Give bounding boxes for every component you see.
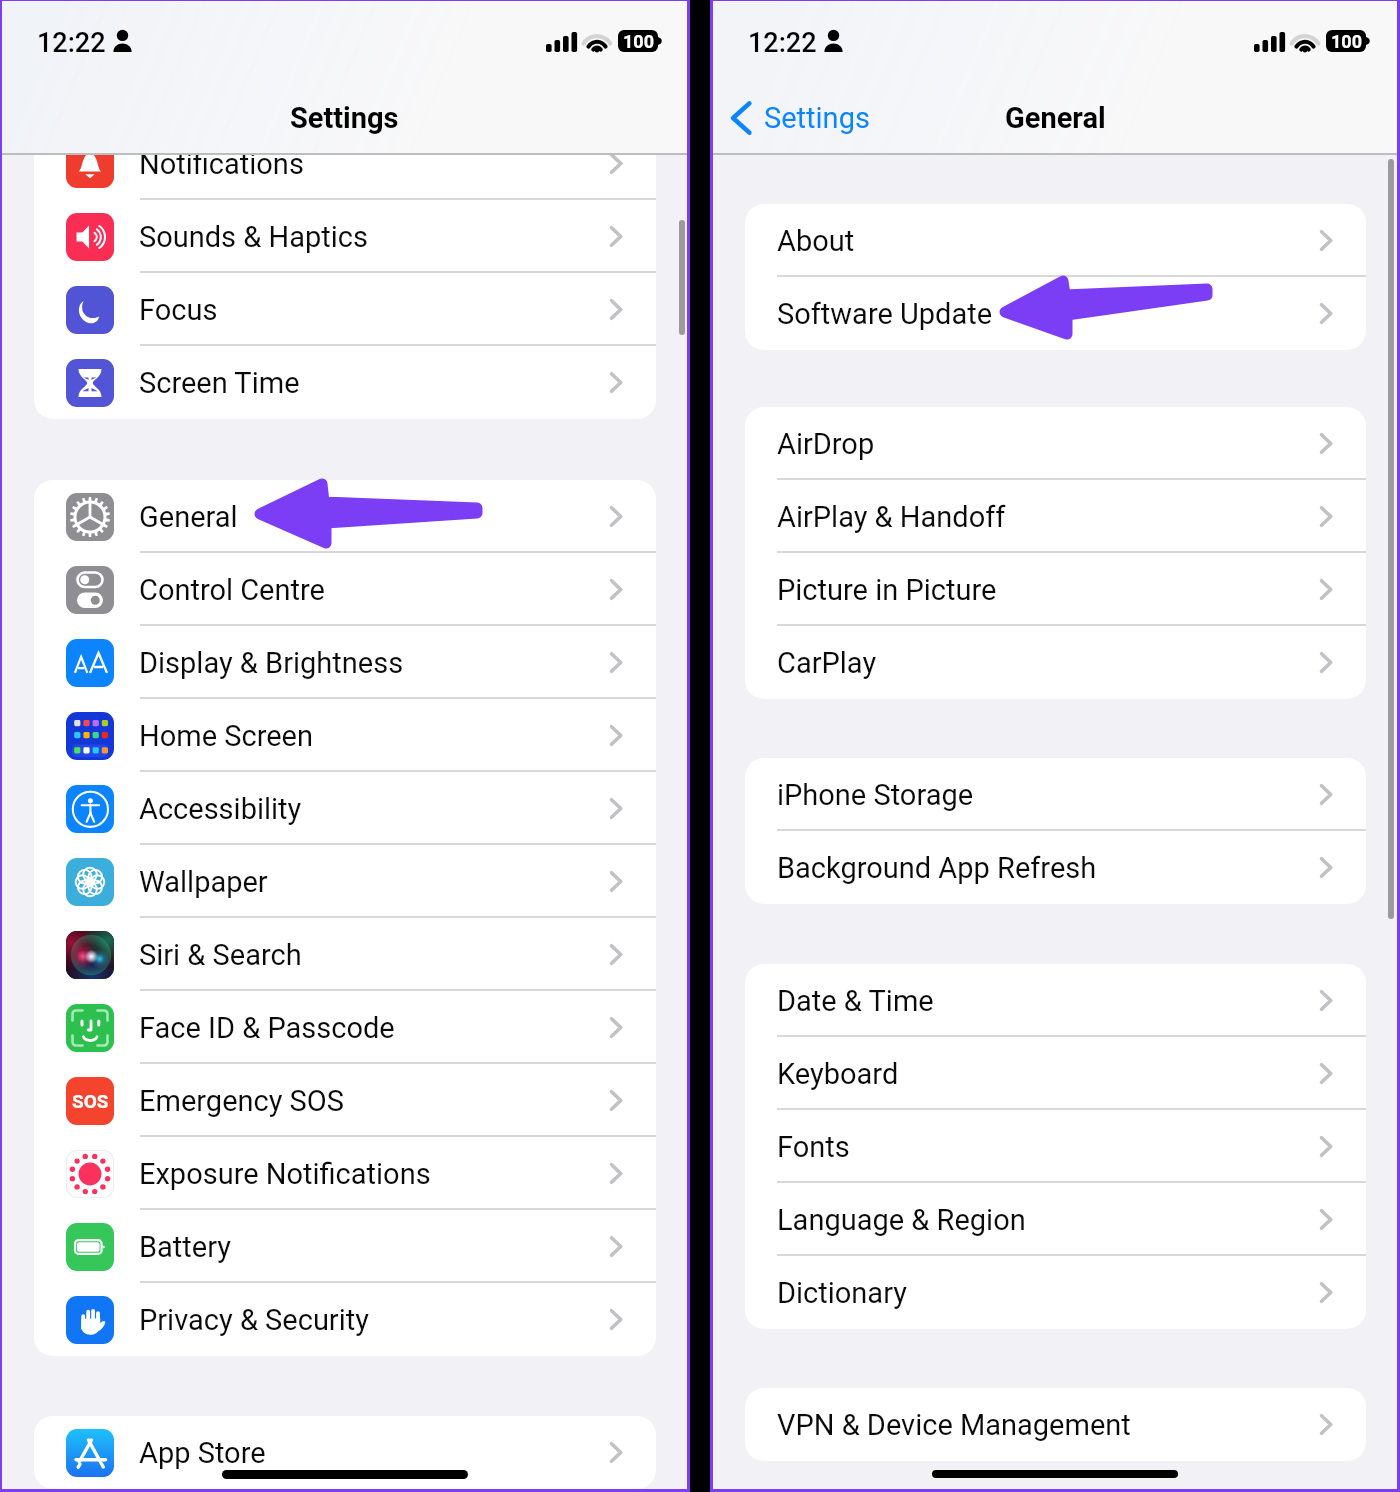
button[interactable]: Exposure Notifications bbox=[34, 1137, 656, 1210]
staticText: CarPlay bbox=[777, 646, 877, 680]
staticText: Battery bbox=[139, 1230, 231, 1264]
staticText: AirDrop bbox=[777, 427, 875, 461]
staticText: General bbox=[1005, 101, 1106, 135]
staticText: Emergency SOS bbox=[139, 1084, 345, 1118]
button[interactable]: CarPlay bbox=[745, 626, 1366, 699]
button[interactable]: General bbox=[34, 480, 656, 553]
button[interactable]: Notifications bbox=[34, 127, 656, 200]
button[interactable]: App Store bbox=[34, 1416, 656, 1489]
button[interactable]: Dictionary bbox=[745, 1256, 1366, 1329]
staticText: AirPlay & Handoff bbox=[777, 500, 1006, 534]
staticText: Display & Brightness bbox=[139, 646, 404, 680]
staticText: 100 bbox=[1331, 31, 1362, 52]
button[interactable]: Picture in Picture bbox=[745, 553, 1366, 626]
button[interactable]: Display & Brightness bbox=[34, 626, 656, 699]
button[interactable]: AirDrop bbox=[745, 407, 1366, 480]
button[interactable]: iPhone Storage bbox=[745, 758, 1366, 831]
staticText: Language & Region bbox=[777, 1203, 1026, 1237]
staticText: Sounds & Haptics bbox=[139, 220, 368, 254]
staticText: iPhone Storage bbox=[777, 778, 974, 812]
button[interactable]: VPN & Device Management bbox=[745, 1388, 1366, 1461]
button[interactable]: Keyboard bbox=[745, 1037, 1366, 1110]
button[interactable]: Sounds & Haptics bbox=[34, 200, 656, 273]
staticText: Wallpaper bbox=[139, 865, 268, 899]
button[interactable]: Date & Time bbox=[745, 964, 1366, 1037]
staticText: Date & Time bbox=[777, 984, 934, 1018]
staticText: Picture in Picture bbox=[777, 573, 997, 607]
staticText: Exposure Notifications bbox=[139, 1157, 431, 1191]
button[interactable]: Back to Settings bbox=[730, 83, 870, 153]
staticText: Home Screen bbox=[139, 719, 313, 753]
staticText: Software Update bbox=[777, 297, 993, 331]
staticText: Privacy & Security bbox=[139, 1303, 369, 1337]
staticText: Focus bbox=[139, 293, 218, 327]
staticText: Notifications bbox=[139, 147, 304, 181]
staticText: VPN & Device Management bbox=[777, 1408, 1131, 1442]
staticText: Accessibility bbox=[139, 792, 302, 826]
staticText: Settings bbox=[764, 101, 870, 135]
button[interactable]: Home Screen bbox=[34, 699, 656, 772]
button[interactable]: Software Update bbox=[745, 277, 1366, 350]
button[interactable]: Background App Refresh bbox=[745, 831, 1366, 904]
button[interactable]: Wallpaper bbox=[34, 845, 656, 918]
button[interactable]: Language & Region bbox=[745, 1183, 1366, 1256]
button[interactable]: Fonts bbox=[745, 1110, 1366, 1183]
staticText: 100 bbox=[623, 31, 654, 52]
button[interactable]: Focus bbox=[34, 273, 656, 346]
button[interactable]: Control Centre bbox=[34, 553, 656, 626]
staticText: Dictionary bbox=[777, 1276, 907, 1310]
staticText: SOS bbox=[72, 1090, 109, 1112]
staticText: General bbox=[139, 500, 238, 534]
staticText: Screen Time bbox=[139, 366, 300, 400]
button[interactable]: AirPlay & Handoff bbox=[745, 480, 1366, 553]
staticText: About bbox=[777, 224, 855, 258]
staticText: Settings bbox=[290, 101, 399, 135]
button[interactable]: Battery bbox=[34, 1210, 656, 1283]
button[interactable]: Privacy & Security bbox=[34, 1283, 656, 1356]
staticText: App Store bbox=[139, 1436, 266, 1470]
button[interactable]: Siri & Search bbox=[34, 918, 656, 991]
staticText: 12:22 bbox=[37, 27, 106, 59]
button[interactable]: Screen Time bbox=[34, 346, 656, 419]
button[interactable]: About bbox=[745, 204, 1366, 277]
button[interactable]: Accessibility bbox=[34, 772, 656, 845]
button[interactable]: SOS bbox=[34, 1064, 656, 1137]
button[interactable]: Face ID & Passcode bbox=[34, 991, 656, 1064]
staticText: Control Centre bbox=[139, 573, 325, 607]
staticText: Siri & Search bbox=[139, 938, 302, 972]
staticText: Keyboard bbox=[777, 1057, 899, 1091]
staticText: 12:22 bbox=[748, 27, 817, 59]
staticText: Fonts bbox=[777, 1130, 850, 1164]
staticText: Face ID & Passcode bbox=[139, 1011, 395, 1045]
staticText: Background App Refresh bbox=[777, 851, 1097, 885]
